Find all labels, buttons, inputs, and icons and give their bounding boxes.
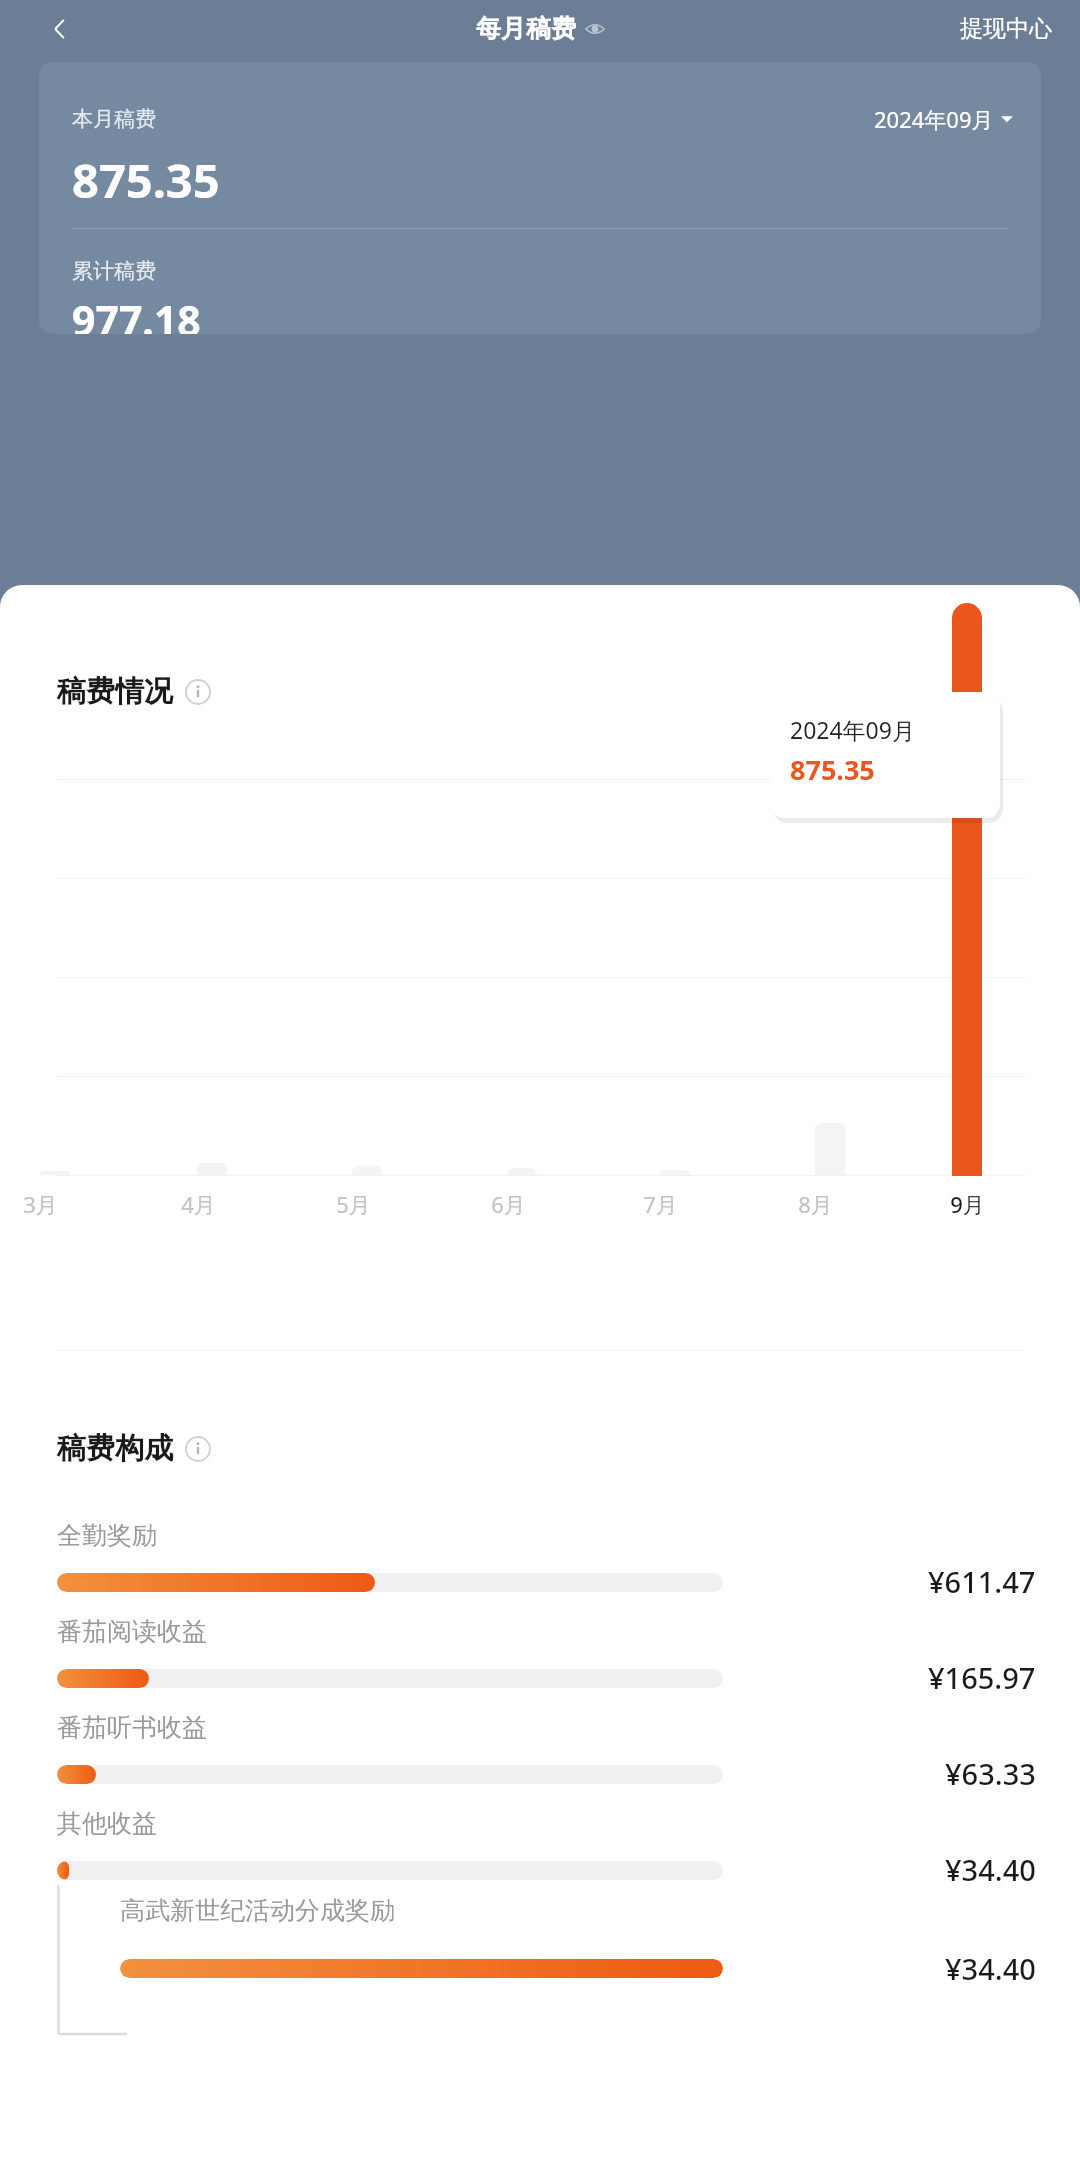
staticText: 4月	[181, 1189, 216, 1219]
staticText: 每月稿费	[476, 13, 576, 44]
staticText: ¥611.47	[928, 1562, 1036, 1601]
button[interactable]: Back	[36, 5, 84, 53]
button[interactable]: 稿费构成	[57, 1430, 211, 1467]
button[interactable]: 番茄听书收益	[0, 1712, 1080, 1808]
button[interactable]: 全勤奖励	[0, 1520, 1080, 1616]
staticText: 提现中心	[960, 14, 1052, 43]
staticText: ¥34.40	[945, 1949, 1036, 1988]
staticText: 8月	[798, 1189, 833, 1219]
staticText: 本月稿费	[72, 106, 156, 132]
staticText: ¥63.33	[945, 1754, 1036, 1793]
staticText: 番茄听书收益	[57, 1712, 207, 1743]
button[interactable]: 提现中心	[932, 6, 1080, 51]
staticText: 7月	[643, 1189, 678, 1219]
staticText: 稿费构成	[57, 1430, 173, 1467]
staticText: 2024年09月	[874, 104, 994, 134]
staticText: 稿费情况	[57, 673, 173, 710]
button[interactable]: 2024年09月	[874, 104, 1013, 134]
button[interactable]: 每月稿费	[476, 13, 605, 44]
button[interactable]: 番茄阅读收益	[0, 1616, 1080, 1712]
staticText: 全勤奖励	[57, 1520, 157, 1551]
other: Toggle visibility	[585, 19, 605, 39]
staticText: 6月	[491, 1189, 526, 1219]
staticText: 累计稿费	[72, 258, 156, 284]
button[interactable]: 其他收益	[0, 1808, 1080, 1904]
staticText: 3月	[23, 1189, 58, 1219]
button[interactable]: 稿费情况	[57, 673, 211, 710]
staticText: 977.18	[72, 292, 201, 334]
button[interactable]: 本月稿费	[39, 62, 1041, 334]
staticText: 875.35	[72, 148, 220, 212]
button[interactable]: 2024年09月	[770, 692, 1000, 818]
staticText: 875.35	[790, 751, 875, 788]
staticText: ¥165.97	[928, 1658, 1036, 1697]
staticText: ¥34.40	[945, 1850, 1036, 1889]
staticText: 5月	[336, 1189, 371, 1219]
staticText: 高武新世纪活动分成奖励	[120, 1895, 395, 1926]
staticText: 2024年09月	[790, 714, 915, 745]
staticText: 其他收益	[57, 1808, 157, 1839]
staticText: 9月	[950, 1189, 985, 1219]
staticText: 番茄阅读收益	[57, 1616, 207, 1647]
